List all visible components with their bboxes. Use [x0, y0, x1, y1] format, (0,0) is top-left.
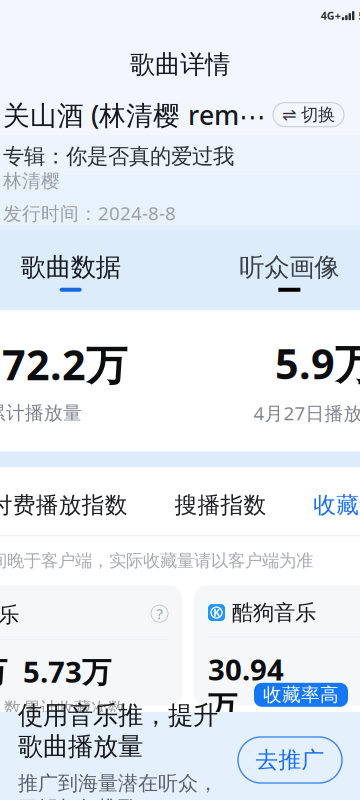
- staticText: 5.9万: [275, 336, 360, 391]
- button[interactable]: 付费播放指数: [0, 491, 128, 519]
- staticText: ⇌: [282, 105, 297, 125]
- staticText: 搜播指数: [174, 491, 266, 519]
- staticText: 收藏量: [313, 491, 360, 519]
- button[interactable]: 歌曲数据: [21, 252, 121, 292]
- staticText: 酷狗音乐: [232, 599, 316, 626]
- button[interactable]: 去推广: [238, 737, 342, 783]
- staticText: 歌曲数据: [21, 252, 121, 283]
- staticText: 使用音乐推，提升歌曲播放量: [18, 700, 218, 762]
- staticText: 听众画像: [239, 252, 339, 283]
- staticText: 去推广: [255, 746, 324, 774]
- button[interactable]: ⇌: [273, 103, 344, 127]
- staticText: 新增收藏趋势: [0, 727, 43, 755]
- staticText: 歌曲详情: [130, 49, 230, 80]
- button[interactable]: 听众画像: [239, 252, 339, 292]
- staticText: 累计收藏次数: [23, 698, 125, 719]
- staticText: K: [213, 605, 220, 620]
- staticText: 5.73万: [23, 652, 111, 691]
- staticText: 数据更新于2025-04-27: [260, 729, 360, 754]
- staticText: 切换: [301, 104, 335, 125]
- staticText: 发行时间：2024-8-8: [3, 200, 176, 225]
- button[interactable]: 收藏量: [313, 491, 360, 519]
- staticText: 累计播放量: [0, 402, 82, 424]
- staticText: 30.94万: [208, 650, 284, 725]
- button[interactable]: 收藏率高: [254, 683, 348, 707]
- staticText: 林清樱: [3, 170, 60, 192]
- staticText: 关山酒 (林清樱 rem⋯: [3, 97, 266, 132]
- staticText: 专辑：你是否真的爱过我: [3, 143, 234, 170]
- staticText: 4月27日播放量: [253, 401, 360, 425]
- staticText: 1,572.2万: [0, 337, 127, 392]
- staticText: 累计收藏人数: [0, 698, 21, 719]
- staticText: 4G+: [321, 9, 341, 23]
- button[interactable]: 搜播指数: [174, 491, 266, 519]
- staticText: 累计收藏人数: [208, 732, 310, 753]
- staticText: 由于更新时间晚于客户端，实际收藏量请以客户端为准: [0, 550, 313, 571]
- staticText: 付费播放指数: [0, 491, 128, 519]
- staticText: 推广到海量潜在听众，了解如何推歌 ❯: [18, 771, 218, 800]
- staticText: QQ音乐: [0, 599, 19, 628]
- staticText: ?: [156, 604, 162, 623]
- staticText: 收藏率高: [263, 683, 339, 706]
- staticText: 4.38万: [0, 652, 7, 691]
- staticText: 5G: [358, 9, 360, 23]
